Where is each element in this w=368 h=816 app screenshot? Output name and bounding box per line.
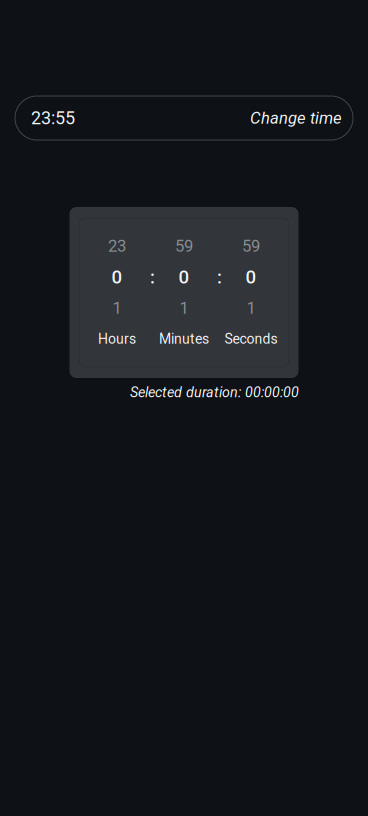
staticText: 59 — [175, 236, 193, 256]
staticText: 59 — [242, 236, 260, 256]
button[interactable]: 59 — [217, 230, 284, 354]
staticText: Selected duration: 00:00:00 — [130, 384, 299, 401]
button[interactable]: 59 — [150, 230, 217, 354]
staticText: : — [217, 266, 222, 288]
button[interactable]: 23 — [83, 230, 150, 354]
staticText: 23 — [108, 236, 126, 256]
staticText: 1 — [179, 298, 188, 318]
staticText: 0 — [178, 266, 189, 288]
staticText: 1 — [112, 298, 121, 318]
staticText: : — [150, 266, 155, 288]
staticText: Minutes — [159, 331, 209, 347]
staticText: Seconds — [224, 331, 277, 347]
staticText: 0 — [111, 266, 122, 288]
staticText: Change time — [250, 108, 342, 128]
button[interactable]: 23:55 — [15, 96, 353, 140]
staticText: 0 — [245, 266, 256, 288]
staticText: Hours — [98, 331, 136, 347]
staticText: 1 — [246, 298, 255, 318]
staticText: 23:55 — [31, 107, 75, 129]
